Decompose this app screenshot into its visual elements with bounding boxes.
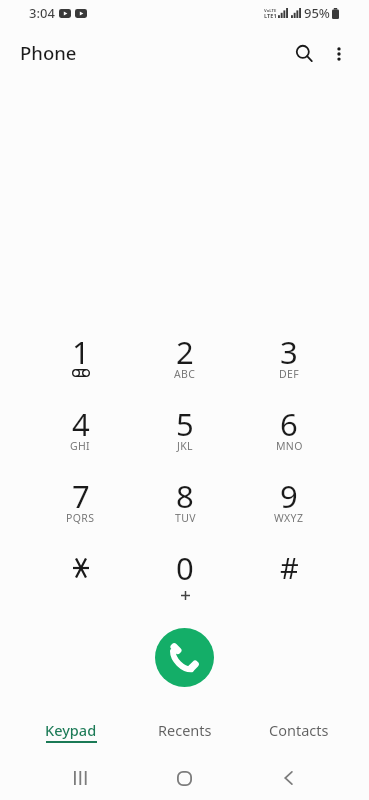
staticText: VoLTE [264, 8, 277, 14]
staticText: 1 [72, 331, 90, 373]
button[interactable]: 3 [237, 320, 341, 392]
staticText: JKL [177, 439, 193, 453]
button[interactable]: 0 [133, 536, 237, 608]
staticText: ABC [174, 367, 196, 381]
staticText: 8 [176, 475, 194, 517]
staticText: Recents [158, 720, 212, 740]
staticText: 95% [304, 4, 330, 22]
staticText: 5 [176, 403, 194, 445]
button[interactable]: Contacts [242, 720, 356, 754]
button[interactable]: 8 [133, 464, 237, 536]
staticText: 9 [280, 475, 298, 517]
staticText: 6 [280, 403, 298, 445]
button[interactable]: 4 [28, 392, 133, 464]
button[interactable]: 2 [133, 320, 237, 392]
button[interactable] [28, 536, 133, 608]
button[interactable]: 6 [237, 392, 341, 464]
staticText: 3:04 [29, 4, 55, 22]
staticText: WXYZ [274, 511, 304, 525]
staticText: Phone [20, 40, 77, 65]
staticText: PQRS [66, 511, 95, 525]
button[interactable]: Back [236, 756, 340, 800]
staticText: # [280, 548, 299, 587]
button[interactable]: 5 [133, 392, 237, 464]
staticText: GHI [70, 439, 91, 453]
button[interactable]: 1 [28, 320, 133, 392]
staticText: DEF [279, 367, 300, 381]
staticText: Keypad [45, 720, 97, 740]
staticText: 4 [72, 403, 90, 445]
staticText: LTE1 [264, 12, 277, 20]
staticText: 3 [280, 331, 298, 373]
button[interactable]: Keypad [13, 720, 128, 754]
staticText: TUV [175, 511, 196, 525]
staticText: 7 [72, 475, 90, 517]
button[interactable]: Recent apps [29, 756, 132, 800]
button[interactable]: Recents [128, 720, 242, 754]
button[interactable]: More options [319, 34, 359, 74]
button[interactable]: # [237, 536, 341, 608]
button[interactable]: 9 [237, 464, 341, 536]
button[interactable]: 7 [28, 464, 133, 536]
staticText: 2 [176, 331, 194, 373]
button[interactable]: Search [284, 33, 324, 73]
staticText: MNO [276, 439, 303, 453]
staticText: Contacts [269, 720, 329, 740]
button[interactable]: Home [132, 756, 236, 800]
staticText: 0 [176, 547, 194, 589]
button[interactable]: Call [155, 628, 214, 687]
